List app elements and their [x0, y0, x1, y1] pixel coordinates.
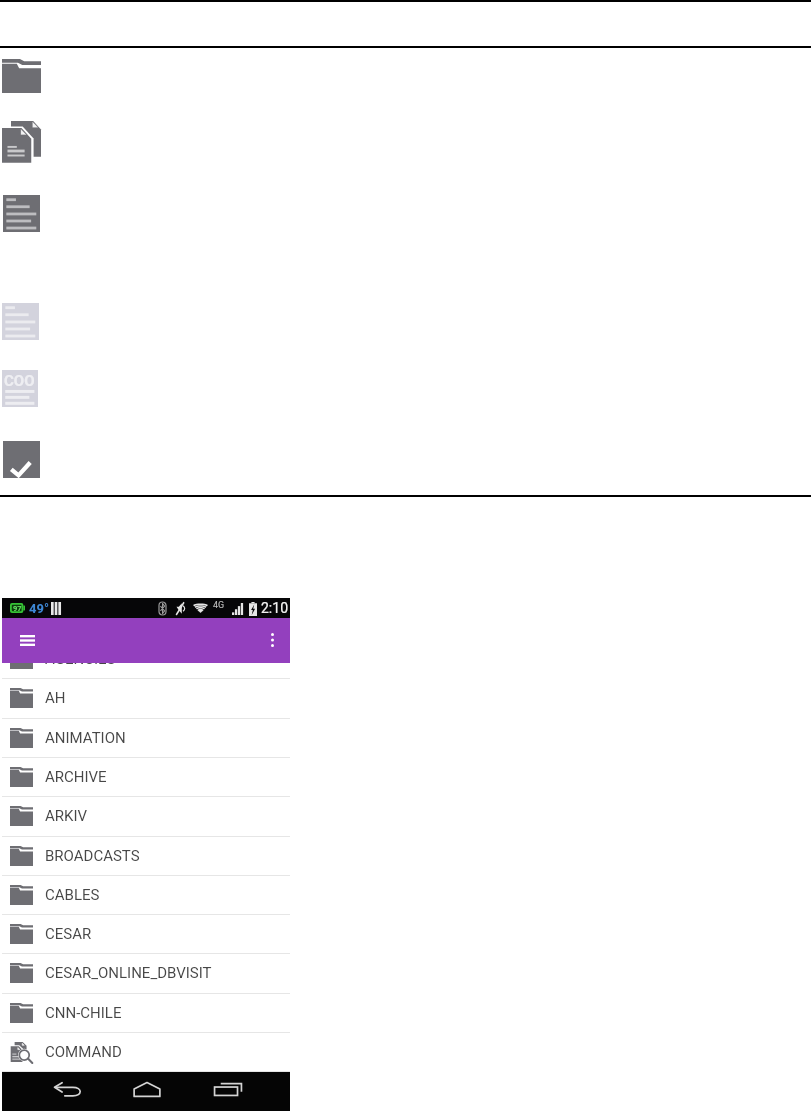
button[interactable]: CABLES [2, 876, 290, 914]
button[interactable]: CNN-CHILE [2, 994, 290, 1032]
button[interactable]: BROADCASTS [2, 837, 290, 875]
button[interactable]: ARKIV [2, 797, 290, 835]
button[interactable]: COMMAND [2, 1033, 290, 1071]
staticText: COO [4, 372, 35, 390]
staticText: CABLES [45, 886, 100, 904]
staticText: CESAR_ONLINE_DBVISIT [45, 964, 212, 982]
staticText: ANIMATION [45, 729, 126, 747]
staticText: CESAR [45, 925, 92, 943]
button[interactable]: Recent apps [208, 1073, 248, 1105]
staticText: ARKIV [45, 807, 88, 825]
button[interactable]: AH [2, 679, 290, 717]
staticText: BROADCASTS [45, 847, 140, 865]
staticText: 97 [13, 604, 22, 613]
staticText: ARCHIVE [45, 768, 107, 786]
button[interactable]: Open navigation menu [8, 624, 46, 656]
button[interactable]: AGENCIES [2, 640, 290, 678]
staticText: CNN-CHILE [45, 1004, 122, 1022]
staticText: 4G [213, 600, 225, 611]
button[interactable]: CESAR_ONLINE_DBVISIT [2, 954, 290, 992]
staticText: 2:10 [261, 600, 288, 616]
button[interactable]: Back [47, 1073, 87, 1105]
staticText: AGENCIES [45, 650, 116, 668]
button[interactable]: More options [257, 624, 287, 656]
staticText: AH [45, 689, 66, 707]
staticText: 49° [29, 601, 49, 616]
button[interactable]: ANIMATION [2, 719, 290, 757]
button[interactable]: ARCHIVE [2, 758, 290, 796]
button[interactable]: Home [127, 1073, 167, 1105]
button[interactable]: CESAR [2, 915, 290, 953]
staticText: COMMAND [45, 1043, 122, 1061]
